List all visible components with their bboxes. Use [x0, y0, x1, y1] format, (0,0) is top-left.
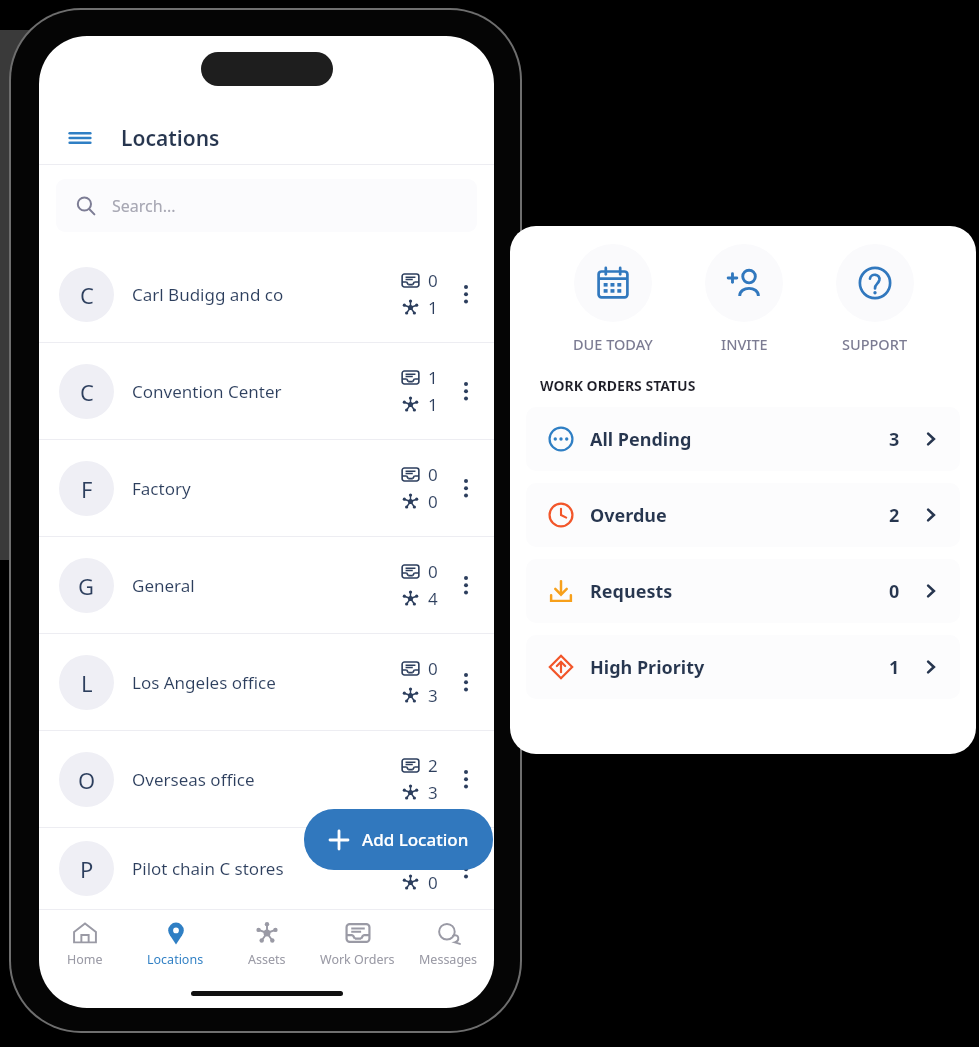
staticText: 0: [428, 871, 438, 894]
staticText: Search...: [112, 195, 176, 217]
staticText: SUPPORT: [842, 334, 908, 354]
staticText: DUE TODAY: [573, 334, 653, 354]
staticText: 1: [428, 296, 438, 319]
staticText: Work Orders: [320, 951, 395, 968]
staticText: 4: [428, 587, 438, 610]
staticText: G: [78, 571, 95, 601]
staticText: Requests: [590, 579, 673, 604]
staticText: Home: [67, 951, 103, 968]
staticText: Pilot chain C stores: [132, 857, 284, 880]
staticText: Carl Budigg and co: [132, 283, 284, 306]
button[interactable]: Assets: [221, 910, 312, 978]
staticText: Assets: [248, 951, 286, 968]
button[interactable]: Messages: [403, 910, 494, 978]
button[interactable]: Menu: [61, 119, 99, 157]
button[interactable]: Overdue: [526, 483, 960, 547]
staticText: 3: [428, 684, 438, 707]
staticText: 0: [428, 269, 438, 292]
staticText: 0: [428, 490, 438, 513]
staticText: Factory: [132, 477, 191, 500]
button[interactable]: INVITE: [699, 244, 789, 354]
staticText: Overdue: [590, 503, 667, 528]
staticText: Overseas office: [132, 768, 255, 791]
staticText: P: [80, 854, 94, 884]
staticText: 0: [889, 579, 900, 604]
staticText: General: [132, 574, 195, 597]
staticText: High Priority: [590, 655, 705, 680]
button[interactable]: Work Orders: [312, 910, 403, 978]
button[interactable]: SUPPORT: [830, 244, 920, 354]
button[interactable]: P: [39, 828, 494, 909]
button[interactable]: More options: [438, 246, 494, 342]
staticText: 3: [428, 781, 438, 804]
button[interactable]: Locations: [130, 910, 221, 978]
button[interactable]: More options: [438, 537, 494, 633]
button[interactable]: More options: [438, 343, 494, 439]
button[interactable]: More options: [438, 634, 494, 730]
button[interactable]: DUE TODAY: [567, 244, 659, 354]
button[interactable]: C: [39, 246, 494, 342]
button[interactable]: O: [39, 731, 494, 827]
staticText: Add Location: [362, 828, 469, 851]
button[interactable]: More options: [438, 440, 494, 536]
staticText: 2: [428, 754, 438, 777]
staticText: Messages: [419, 951, 478, 968]
staticText: 0: [428, 844, 438, 867]
button[interactable]: High Priority: [526, 635, 960, 699]
button[interactable]: C: [39, 343, 494, 439]
staticText: 0: [428, 560, 438, 583]
staticText: All Pending: [590, 427, 692, 452]
button[interactable]: F: [39, 440, 494, 536]
staticText: INVITE: [721, 334, 768, 354]
staticText: 1: [428, 366, 438, 389]
button[interactable]: More options: [438, 731, 494, 827]
button[interactable]: Home: [39, 910, 130, 978]
button[interactable]: L: [39, 634, 494, 730]
button[interactable]: More options: [438, 828, 494, 909]
staticText: 0: [428, 463, 438, 486]
button[interactable]: G: [39, 537, 494, 633]
staticText: 1: [889, 655, 900, 680]
staticText: WORK ORDERS STATUS: [540, 376, 696, 395]
staticText: 3: [889, 427, 900, 452]
staticText: Convention Center: [132, 380, 282, 403]
staticText: O: [78, 765, 96, 795]
button[interactable]: Requests: [526, 559, 960, 623]
staticText: 1: [428, 393, 438, 416]
staticText: Los Angeles office: [132, 671, 276, 694]
button[interactable]: All Pending: [526, 407, 960, 471]
staticText: Locations: [147, 951, 204, 968]
staticText: 0: [428, 657, 438, 680]
staticText: Locations: [121, 124, 220, 153]
button[interactable]: Add Location: [304, 809, 493, 870]
staticText: L: [81, 668, 93, 698]
button[interactable]: Search...: [56, 179, 477, 232]
staticText: 2: [889, 503, 900, 528]
staticText: C: [80, 280, 94, 310]
staticText: F: [81, 474, 93, 504]
staticText: C: [80, 377, 94, 407]
